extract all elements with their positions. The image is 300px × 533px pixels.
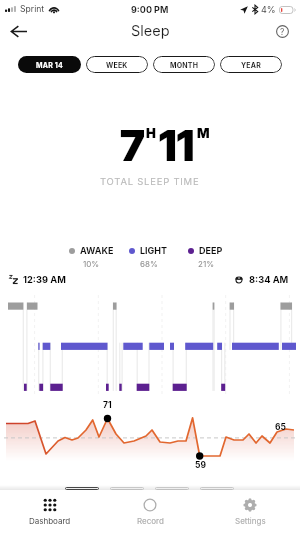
staticText: Sprint: [20, 4, 45, 14]
button[interactable]: Record: [100, 490, 200, 533]
staticText: 7: [120, 119, 145, 171]
staticText: 4%: [261, 4, 276, 15]
button[interactable]: Settings: [200, 490, 300, 533]
staticText: 12:39 AM: [23, 274, 66, 285]
staticText: 21%: [198, 259, 214, 269]
button[interactable]: MONTH: [153, 56, 215, 73]
staticText: WEEK: [106, 61, 128, 69]
button[interactable]: Back: [6, 18, 32, 44]
staticText: 65: [275, 422, 286, 432]
button[interactable]: MAR 14: [18, 56, 81, 73]
button[interactable]: WEEK: [86, 56, 148, 73]
staticText: 71: [103, 400, 112, 410]
staticText: DEEP: [199, 245, 223, 256]
staticText: 59: [195, 460, 206, 470]
staticText: MONTH: [170, 61, 199, 69]
staticText: 68%: [140, 259, 158, 269]
staticText: Sleep: [131, 22, 170, 40]
button[interactable]: Dashboard: [0, 490, 100, 533]
staticText: LIGHT: [140, 245, 168, 256]
staticText: YEAR: [241, 61, 261, 69]
staticText: M: [197, 125, 210, 141]
staticText: 11: [159, 119, 195, 171]
staticText: 8:34 AM: [249, 274, 289, 285]
staticText: TOTAL SLEEP TIME: [100, 176, 200, 187]
button[interactable]: Help: [270, 19, 294, 43]
staticText: ?: [280, 27, 285, 37]
staticText: MAR 14: [36, 61, 63, 69]
staticText: Dashboard: [29, 516, 71, 526]
button[interactable]: YEAR: [220, 56, 282, 73]
staticText: 9:00 PM: [131, 4, 169, 15]
staticText: Settings: [235, 516, 266, 526]
staticText: Record: [137, 516, 164, 526]
staticText: H: [146, 125, 156, 141]
staticText: AWAKE: [80, 245, 114, 256]
staticText: 10%: [83, 259, 100, 269]
